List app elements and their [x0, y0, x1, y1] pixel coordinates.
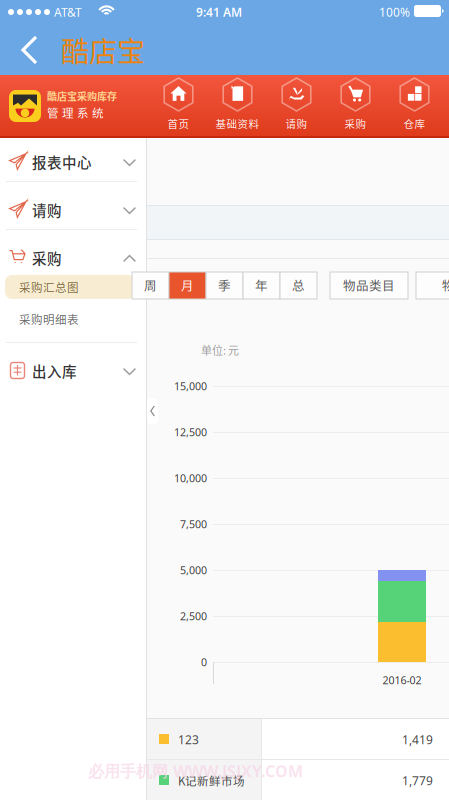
staticText: 酷店宝采购库存: [47, 89, 117, 103]
button[interactable]: Back: [0, 27, 58, 73]
staticText: K记新鲜市场: [178, 772, 245, 789]
button[interactable]: 出入库: [0, 348, 147, 393]
button[interactable]: 请购: [0, 187, 147, 232]
staticText: 12,500: [174, 425, 207, 439]
staticText: 10,000: [174, 471, 207, 485]
staticText: 季: [218, 276, 231, 294]
button[interactable]: 物品类目: [330, 272, 408, 299]
staticText: 请购: [285, 116, 307, 131]
button[interactable]: 月: [169, 272, 206, 299]
button[interactable]: 采购明细表: [5, 306, 145, 332]
staticText: 总: [292, 276, 305, 294]
staticText: 100%: [379, 4, 410, 20]
staticText: 2016-02: [382, 673, 421, 687]
staticText: 请购: [32, 199, 62, 220]
button[interactable]: 总: [280, 272, 317, 299]
staticText: 月: [181, 276, 194, 294]
button[interactable]: 请购: [267, 75, 326, 136]
button[interactable]: 基础资料: [208, 75, 267, 136]
staticText: 出入库: [32, 360, 77, 381]
staticText: 5,000: [180, 563, 207, 577]
staticText: 报表中心: [32, 151, 92, 172]
staticText: 首页: [167, 116, 189, 131]
staticText: 基础资料: [215, 116, 259, 131]
staticText: 采购明细表: [19, 311, 79, 327]
button[interactable]: 报表中心: [0, 139, 147, 184]
staticText: 采购汇总图: [19, 279, 79, 295]
staticText: 仓库: [403, 116, 425, 131]
staticText: 物品类目: [343, 276, 395, 294]
staticText: 物品: [442, 276, 449, 294]
staticText: 7,500: [180, 517, 207, 531]
staticText: 管 理 系 统: [47, 104, 104, 121]
button[interactable]: 采购汇总图: [5, 275, 145, 299]
button[interactable]: 季: [206, 272, 243, 299]
staticText: 1,779: [402, 772, 433, 788]
staticText: 酷店宝: [61, 30, 145, 70]
button[interactable]: 周: [132, 272, 169, 299]
staticText: 必用手机网 WWW.JSJXY.COM: [88, 760, 303, 782]
staticText: 采购: [344, 116, 366, 131]
staticText: 1,419: [402, 731, 433, 747]
staticText: 单位: 元: [201, 342, 239, 358]
staticText: 2,500: [180, 609, 207, 623]
staticText: 采购: [32, 247, 62, 268]
button[interactable]: 物品: [416, 272, 449, 299]
staticText: 123: [178, 731, 199, 747]
staticText: 年: [255, 276, 268, 294]
button[interactable]: 仓库: [385, 75, 444, 136]
staticText: 周: [144, 276, 157, 294]
button[interactable]: 年: [243, 272, 280, 299]
button[interactable]: 首页: [149, 75, 208, 136]
staticText: 9:41 AM: [196, 4, 242, 20]
button[interactable]: 采购: [326, 75, 385, 136]
staticText: 15,000: [174, 379, 207, 393]
staticText: AT&T: [54, 4, 82, 20]
staticText: 0: [201, 655, 207, 669]
button[interactable]: 采购: [0, 235, 147, 280]
